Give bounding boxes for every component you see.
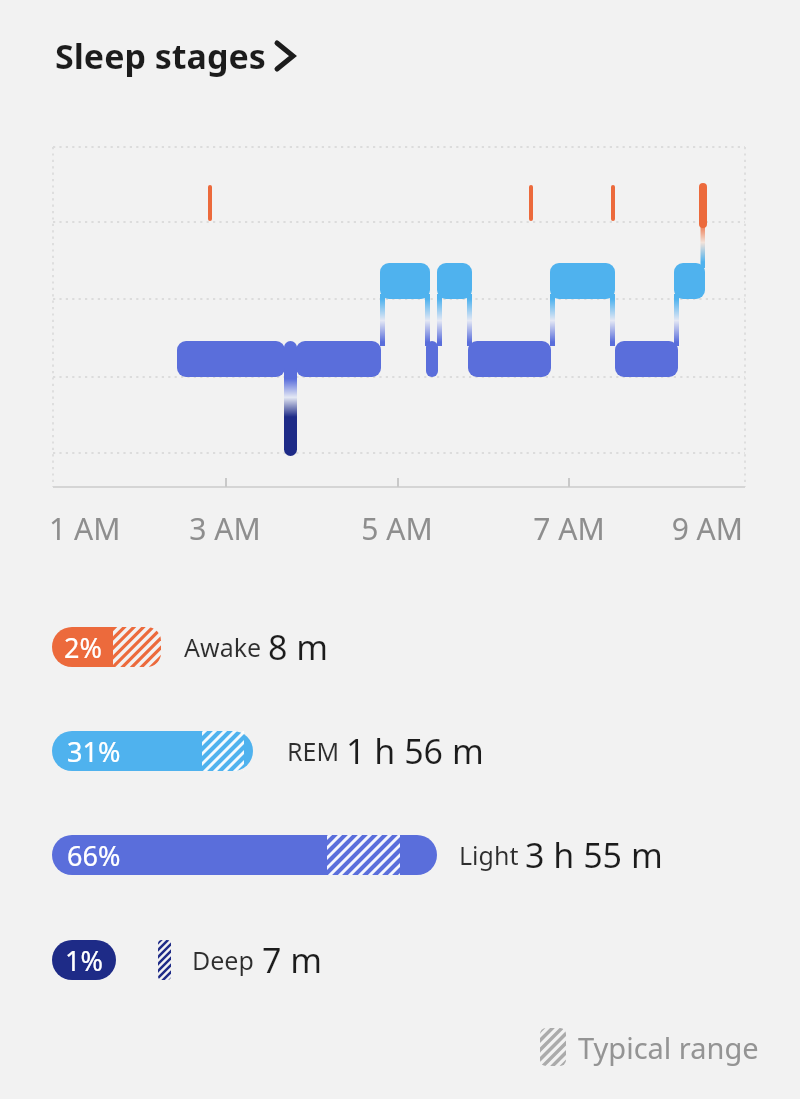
staticText: 1 h 56 m xyxy=(346,728,484,774)
staticText: Awake xyxy=(184,630,262,664)
staticText: REM xyxy=(287,734,340,768)
staticText: 7 m xyxy=(262,937,323,983)
staticText: 66% xyxy=(67,837,121,874)
button[interactable]: Sleep stages xyxy=(50,30,305,82)
staticText: 1% xyxy=(65,942,103,979)
staticText: Sleep stages xyxy=(55,33,266,79)
staticText: 2% xyxy=(64,629,102,666)
staticText: 7 AM xyxy=(499,508,639,1099)
staticText: Light xyxy=(459,838,519,872)
staticText: 1 AM xyxy=(49,508,189,1099)
staticText: 31% xyxy=(67,733,121,770)
staticText: 3 h 55 m xyxy=(525,832,663,878)
staticText: Typical range xyxy=(578,1028,759,1067)
staticText: 3 AM xyxy=(155,508,295,1099)
staticText: Deep xyxy=(192,943,254,977)
staticText: 9 AM xyxy=(603,508,743,1099)
staticText: 8 m xyxy=(268,624,329,670)
staticText: 5 AM xyxy=(327,508,467,1099)
